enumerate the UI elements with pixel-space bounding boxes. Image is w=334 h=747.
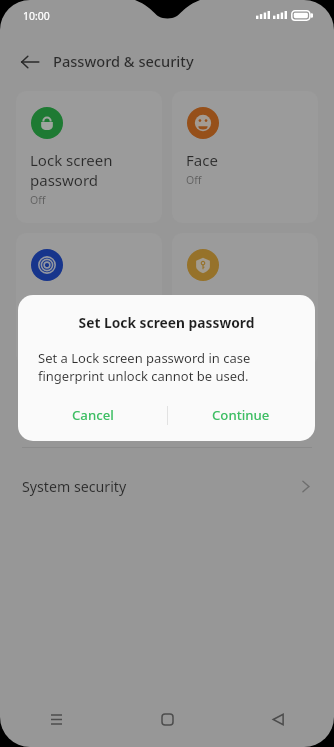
button[interactable]: Continue: [167, 397, 315, 433]
button[interactable]: System security: [0, 460, 334, 512]
staticText: Continue: [212, 406, 270, 424]
button[interactable]: Cancel: [18, 397, 167, 433]
button[interactable]: Fingerprint: [16, 233, 162, 365]
staticText: Privacy: [186, 292, 237, 312]
button[interactable]: Face: [172, 91, 318, 223]
staticText: Set Lock screen password: [18, 313, 315, 332]
staticText: Off: [30, 193, 46, 207]
staticText: System security: [22, 477, 127, 496]
button[interactable]: Recents: [0, 695, 112, 743]
staticText: Fingerprint: [30, 292, 109, 312]
staticText: Off: [186, 173, 202, 187]
button[interactable]: Lock screen password: [16, 91, 162, 223]
button[interactable]: Home: [112, 695, 223, 743]
button[interactable]: Privacy: [172, 233, 318, 365]
staticText: Password & security: [53, 51, 194, 71]
staticText: Lock screen password: [30, 150, 113, 190]
staticText: Off: [186, 315, 202, 329]
staticText: 10:00: [23, 9, 50, 23]
staticText: Set a Lock screen password in case finge…: [38, 349, 251, 385]
button[interactable]: Back: [6, 38, 54, 86]
staticText: Face: [186, 150, 218, 170]
staticText: Cancel: [72, 406, 114, 424]
button[interactable]: Back: [223, 695, 334, 743]
